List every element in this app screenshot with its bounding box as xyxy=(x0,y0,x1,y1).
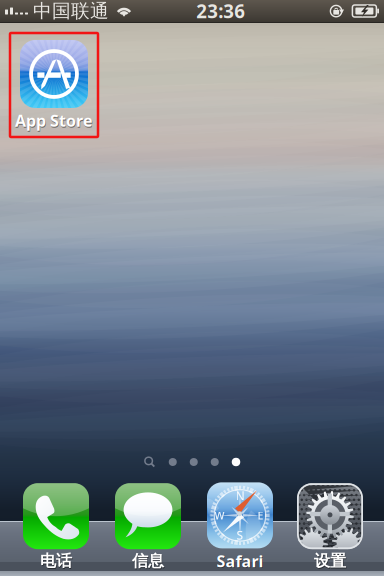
button[interactable]: 设置 xyxy=(284,483,376,571)
staticText: 23:36 xyxy=(196,0,245,23)
staticText: 设置 xyxy=(315,552,347,572)
staticText: 电话 xyxy=(40,551,72,571)
staticText: Safari xyxy=(216,550,263,572)
staticText: App Store xyxy=(15,110,93,131)
staticText: 设置 xyxy=(314,551,346,571)
button[interactable]: 信息 xyxy=(102,483,194,571)
staticText: 信息 xyxy=(133,552,165,572)
staticText: 中国联通 xyxy=(33,0,109,22)
staticText: App Store xyxy=(16,111,94,132)
button[interactable]: 电话 xyxy=(10,483,102,571)
button[interactable]: N xyxy=(194,482,286,572)
staticText: 信息 xyxy=(132,551,164,571)
staticText: 电话 xyxy=(41,552,73,572)
button[interactable]: App Store xyxy=(10,33,98,131)
staticText: N xyxy=(235,488,244,503)
staticText: E xyxy=(257,508,263,522)
staticText: S xyxy=(236,527,243,543)
staticText: W xyxy=(214,508,224,522)
staticText: Safari xyxy=(217,551,264,572)
